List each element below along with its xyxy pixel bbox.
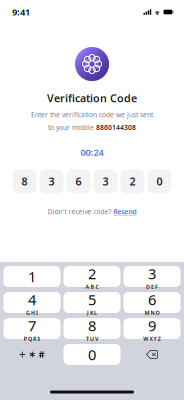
staticText: JKL [87, 309, 97, 316]
staticText: 5 [88, 290, 96, 309]
staticText: DEF [146, 283, 158, 290]
staticText: 3 [48, 174, 54, 188]
staticText: 8860144308 [96, 123, 136, 132]
button[interactable]: 7 [3, 318, 60, 339]
staticText: 7 [28, 316, 36, 335]
button[interactable]: Symbols [3, 344, 60, 365]
button[interactable]: 1 [3, 266, 60, 287]
button[interactable]: 4 [3, 292, 60, 313]
staticText: 2 [88, 264, 96, 283]
staticText: Verification Code [47, 91, 137, 105]
staticText: PQRS [24, 335, 40, 342]
staticText: 2 [129, 174, 135, 188]
button[interactable]: 2 [63, 266, 120, 287]
button[interactable]: 5 [63, 292, 120, 313]
staticText: 8 [21, 174, 27, 188]
button[interactable]: 0 [63, 344, 120, 365]
staticText: 8 [88, 316, 96, 335]
staticText: 0 [156, 174, 162, 188]
staticText: GHI [26, 309, 38, 316]
staticText: 3 [102, 174, 108, 188]
button[interactable]: 2 [120, 169, 144, 193]
staticText: MNO [144, 309, 160, 316]
staticText: 4 [28, 290, 36, 309]
staticText: 0 [88, 345, 96, 364]
button[interactable]: 8 [12, 169, 36, 193]
staticText: WXYZ [143, 335, 161, 342]
staticText: 3 [148, 264, 156, 283]
button[interactable]: 9 [123, 318, 180, 339]
staticText: 1 [28, 267, 36, 286]
staticText: to your mobile [48, 123, 96, 132]
button[interactable]: 3 [93, 169, 117, 193]
button[interactable]: 0 [147, 169, 171, 193]
button[interactable]: Delete [123, 344, 180, 365]
staticText: 6 [75, 174, 81, 188]
button[interactable]: Resend [113, 207, 136, 216]
staticText: 9 [148, 316, 156, 335]
staticText: 6 [148, 290, 156, 309]
staticText: Resend [113, 207, 136, 216]
staticText: Didn't receive code? [47, 207, 111, 216]
button[interactable]: 3 [39, 169, 63, 193]
staticText: Enter the verification code we just sent [31, 110, 153, 119]
button[interactable]: 8 [63, 318, 120, 339]
button[interactable]: 6 [123, 292, 180, 313]
staticText: TUV [86, 335, 98, 342]
button[interactable]: 3 [123, 266, 180, 287]
button[interactable]: 6 [66, 169, 90, 193]
staticText: 9:41 [12, 6, 30, 18]
staticText: 00:24 [80, 146, 103, 158]
staticText: ABC [85, 283, 99, 290]
